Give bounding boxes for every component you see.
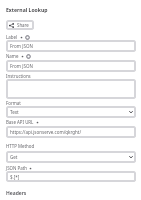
button[interactable] [6, 79, 136, 99]
staticText: Label [6, 34, 18, 40]
button[interactable]: https://api.jsonserve.com/qkrght/ [6, 126, 136, 138]
staticText: Get [10, 154, 18, 160]
staticText: Format [6, 100, 21, 106]
staticText: HTTP Method [6, 143, 35, 149]
staticText: External Lookup [6, 7, 48, 14]
staticText: $.[*] [10, 174, 20, 180]
button[interactable]: From JSON [6, 40, 136, 52]
staticText: Base API URL [6, 119, 34, 125]
staticText: Text [10, 109, 19, 115]
staticText: Name [6, 53, 19, 59]
staticText: Share [17, 22, 29, 28]
staticText: Instructions [6, 73, 31, 79]
other: Open dropdown [129, 110, 133, 114]
button[interactable]: Text [6, 106, 136, 118]
button[interactable]: From JSON [6, 60, 136, 72]
button[interactable]: $.[*] [6, 171, 136, 182]
other: Settings [26, 54, 31, 59]
staticText: From JSON [10, 43, 33, 49]
staticText: Headers [6, 190, 27, 197]
staticText: https://api.jsonserve.com/qkrght/ [10, 129, 82, 135]
staticText: From JSON [10, 63, 33, 69]
button[interactable]: Share [6, 20, 34, 30]
other: Open dropdown [129, 155, 133, 159]
other: Settings [25, 35, 30, 40]
staticText: JSON Path [6, 165, 27, 171]
button[interactable]: Get [6, 151, 136, 163]
